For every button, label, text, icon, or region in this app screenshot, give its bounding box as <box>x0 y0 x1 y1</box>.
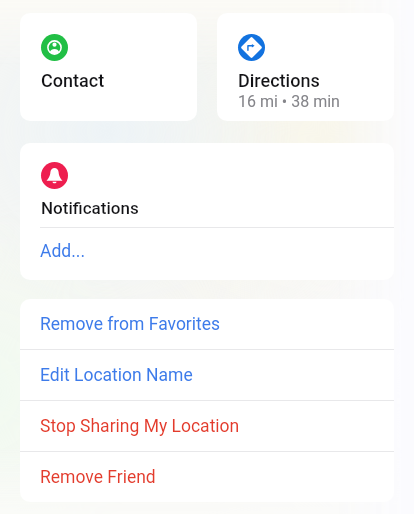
staticText: Directions <box>238 70 320 91</box>
button[interactable]: Remove Friend <box>20 452 394 502</box>
button[interactable]: Remove from Favorites <box>20 299 394 349</box>
button[interactable]: Stop Sharing My Location <box>20 401 394 451</box>
staticText: Remove Friend <box>40 467 156 488</box>
button[interactable]: Contact <box>20 13 197 121</box>
staticText: Edit Location Name <box>40 365 193 386</box>
staticText: 16 mi • 38 min <box>238 92 340 111</box>
button[interactable]: Edit Location Name <box>20 350 394 400</box>
button[interactable]: Notifications <box>20 143 394 227</box>
staticText: Remove from Favorites <box>40 314 221 335</box>
staticText: Add... <box>40 241 85 262</box>
staticText: Contact <box>41 70 105 91</box>
button[interactable]: Add... <box>20 228 394 280</box>
button[interactable]: Directions <box>217 13 394 121</box>
staticText: Notifications <box>41 198 139 218</box>
staticText: Stop Sharing My Location <box>40 416 240 437</box>
